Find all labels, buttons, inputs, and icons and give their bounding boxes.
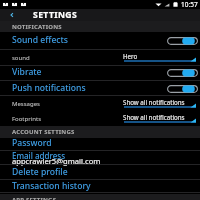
button[interactable]: Vibrate — [0, 65, 200, 81]
staticText: Show all notifications — [123, 98, 185, 106]
staticText: Vibrate — [12, 66, 42, 78]
staticText: SETTINGS — [33, 9, 78, 21]
button[interactable]: Back — [0, 9, 24, 21]
staticText: Password — [12, 137, 52, 149]
staticText: Email address — [12, 150, 66, 161]
button[interactable]: sound — [0, 50, 200, 66]
button[interactable]: Push notifications — [0, 81, 200, 96]
button[interactable]: Sound effects — [0, 32, 200, 50]
staticText: appcrawler5@gmail.com — [12, 156, 101, 166]
button[interactable]: Password — [0, 137, 200, 151]
button[interactable]: Email address — [0, 151, 200, 165]
staticText: Footprints — [12, 115, 42, 123]
button[interactable]: Footprints — [0, 111, 200, 126]
staticText: sound — [12, 54, 30, 62]
staticText: ACCOUNT SETTINGS — [12, 128, 75, 136]
button[interactable]: Messages — [0, 96, 200, 111]
button[interactable]: Delete profile — [0, 165, 200, 180]
staticText: APP SETTINGS — [12, 196, 57, 200]
staticText: Push notifications — [12, 82, 86, 94]
staticText: Hero — [123, 52, 138, 60]
button[interactable]: Transaction history — [0, 180, 200, 193]
staticText: Show all notifications — [123, 113, 185, 121]
staticText: Delete profile — [12, 166, 68, 178]
staticText: Transaction history — [12, 180, 91, 192]
staticText: Messages — [12, 100, 40, 108]
staticText: NOTIFICATIONS — [12, 23, 62, 31]
staticText: 10:57 — [181, 0, 198, 9]
staticText: Sound effects — [12, 34, 68, 46]
